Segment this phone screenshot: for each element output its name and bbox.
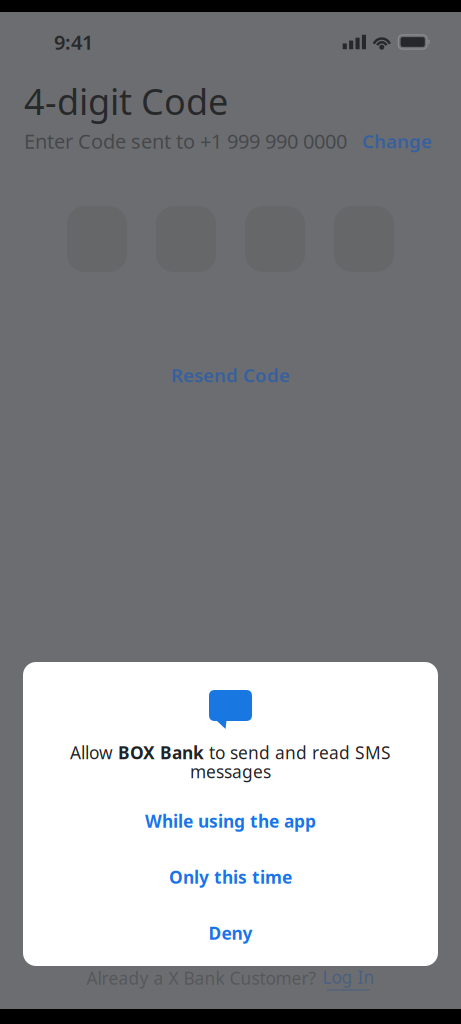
staticText: Change xyxy=(362,129,432,153)
staticText: Allow xyxy=(70,741,118,764)
staticText: Log In xyxy=(322,965,374,988)
staticText: While using the app xyxy=(145,809,316,832)
staticText: to send and read SMS xyxy=(204,741,391,764)
staticText: Deny xyxy=(208,921,252,944)
staticText: BOX Bank xyxy=(118,741,204,764)
staticText: Only this time xyxy=(169,865,292,888)
button[interactable]: Change xyxy=(362,129,432,153)
staticText: Enter Code sent to +1 999 990 0000 xyxy=(24,128,347,154)
staticText: 4-digit Code xyxy=(24,77,228,125)
staticText: 9:41 xyxy=(54,29,93,55)
staticText: Resend Code xyxy=(171,363,290,387)
staticText: Already a X Bank Customer? xyxy=(86,966,316,989)
button[interactable]: Only this time xyxy=(23,866,438,888)
button[interactable]: Resend Code xyxy=(0,363,461,387)
button[interactable]: Deny xyxy=(23,922,438,944)
button[interactable]: While using the app xyxy=(23,810,438,832)
staticText: messages xyxy=(190,760,271,783)
button[interactable]: Log In xyxy=(322,965,374,990)
